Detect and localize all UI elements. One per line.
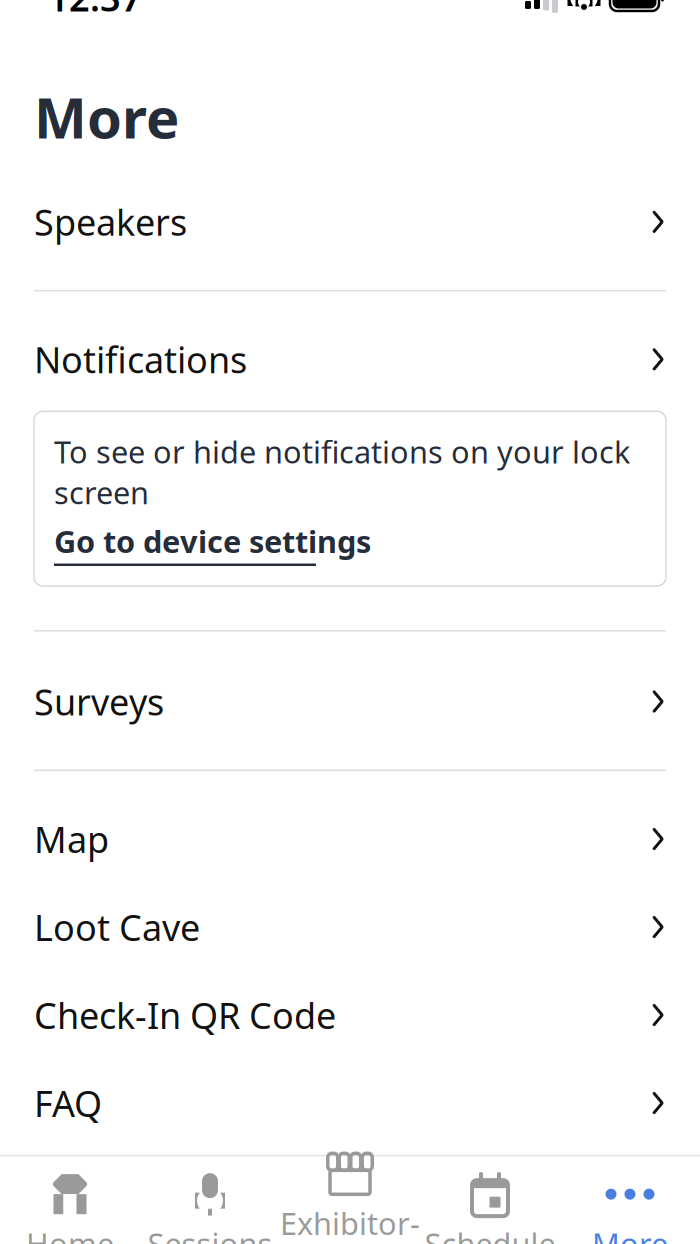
staticText: Notifications [34,335,247,383]
button[interactable]: Schedule [420,1159,560,1244]
staticText: To see or hide notifications on your loc… [54,431,630,513]
staticText: Speakers [34,198,187,246]
staticText: More [34,79,179,154]
button[interactable]: More [560,1159,700,1244]
staticText: Loot Cave [34,903,200,951]
staticText: Schedule [424,1223,555,1244]
button[interactable]: Loot Cave [0,883,700,971]
button[interactable]: Sessions [140,1159,280,1244]
staticText: Go to device settings [54,521,371,561]
button[interactable]: Home [0,1159,140,1244]
staticText: 12:37 [48,0,142,21]
staticText: Exhibitors [280,1203,420,1244]
button[interactable]: Go to device settings [54,521,371,566]
staticText: Map [34,815,109,863]
button[interactable]: Notifications [0,315,700,403]
staticText: Check-In QR Code [34,991,336,1039]
staticText: FAQ [34,1079,102,1127]
button[interactable]: FAQ [0,1059,700,1147]
button[interactable]: Exhibitors [280,1139,420,1244]
staticText: More [592,1223,668,1244]
button[interactable]: Map [0,795,700,883]
button[interactable]: Speakers [0,178,700,266]
staticText: Home [26,1223,114,1244]
button[interactable]: Check-In QR Code [0,971,700,1059]
staticText: Sessions [147,1223,272,1244]
button[interactable]: Surveys [0,657,700,745]
staticText: Surveys [34,678,164,725]
